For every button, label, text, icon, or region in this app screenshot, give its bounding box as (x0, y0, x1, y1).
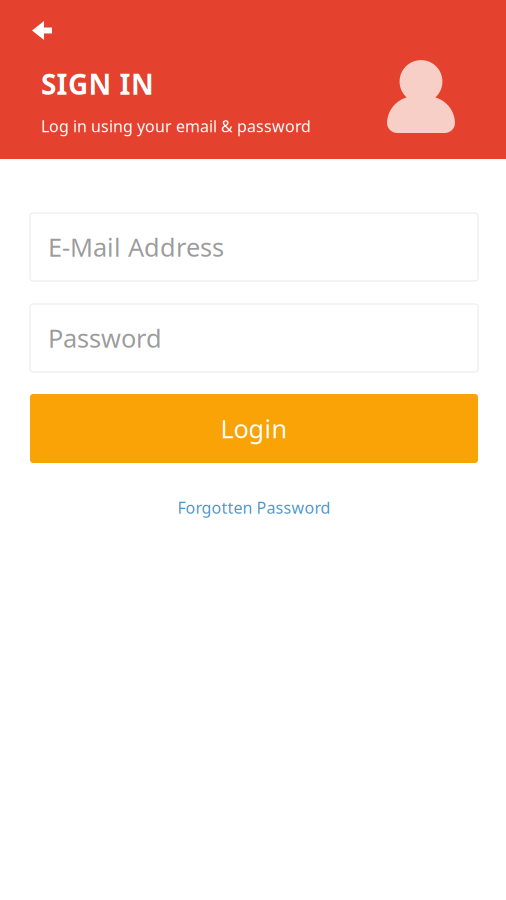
staticText: E-Mail Address (48, 230, 224, 264)
staticText: Log in using your email & password (41, 115, 311, 137)
staticText: SIGN IN (41, 65, 154, 102)
staticText: Login (220, 412, 287, 445)
button[interactable]: Back (0, 0, 70, 54)
button[interactable]: Forgotten Password (167, 491, 340, 524)
button[interactable]: Password (30, 304, 478, 372)
button[interactable]: E-Mail Address (30, 213, 478, 281)
button[interactable]: Login (30, 394, 478, 463)
staticText: Password (48, 321, 162, 355)
staticText: Forgotten Password (177, 497, 330, 518)
